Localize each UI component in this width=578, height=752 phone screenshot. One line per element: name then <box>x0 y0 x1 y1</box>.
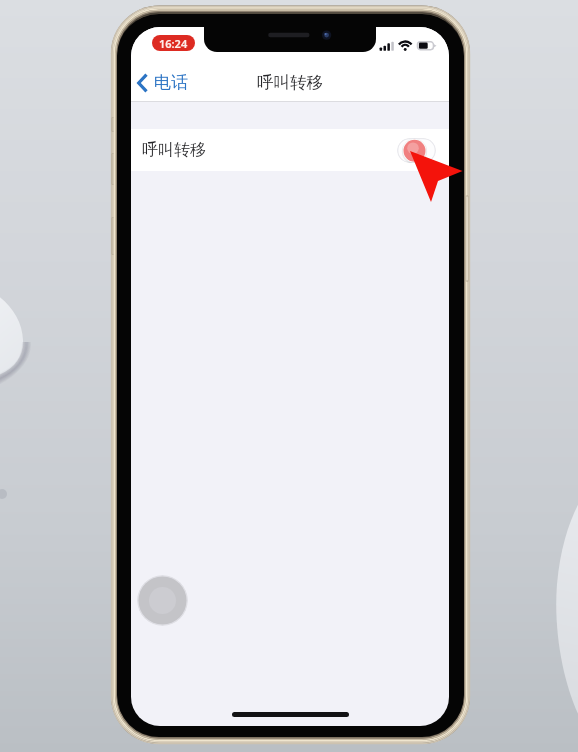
staticText: 电话 <box>154 72 188 93</box>
button[interactable]: 电话 <box>133 68 192 97</box>
staticText: 呼叫转移 <box>257 72 323 93</box>
staticText: 16:24 <box>159 36 188 51</box>
staticText: 呼叫转移 <box>142 140 206 160</box>
button[interactable]: AssistiveTouch <box>137 575 188 626</box>
button[interactable]: 16:24 <box>152 35 195 51</box>
button[interactable]: Call forwarding toggle <box>397 138 436 163</box>
button[interactable]: 呼叫转移 <box>131 129 449 171</box>
